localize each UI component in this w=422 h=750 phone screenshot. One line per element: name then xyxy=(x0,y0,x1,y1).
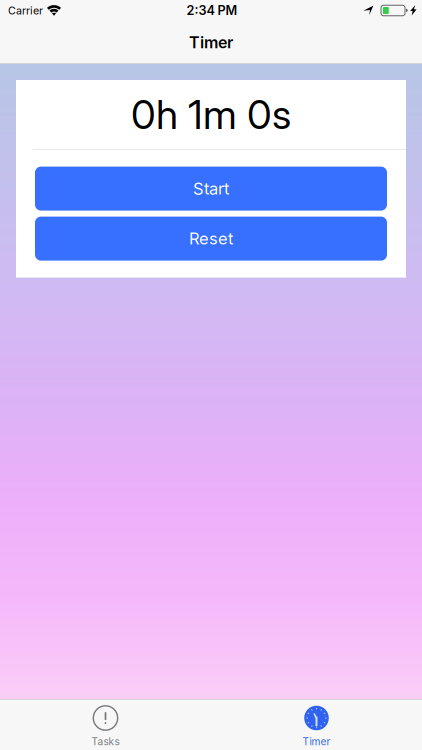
staticText: Start xyxy=(193,179,229,199)
button[interactable]: Start xyxy=(35,167,387,211)
button[interactable]: Reset xyxy=(35,217,387,261)
button[interactable]: Tasks xyxy=(0,699,211,749)
staticText: 0h 1m 0s xyxy=(131,90,291,139)
staticText: Timer xyxy=(189,33,233,52)
staticText: Reset xyxy=(189,229,233,249)
staticText: Carrier xyxy=(8,4,43,17)
staticText: Tasks xyxy=(91,735,119,748)
staticText: Timer xyxy=(302,735,330,748)
button[interactable]: Timer xyxy=(211,699,422,749)
staticText: 2:34 PM xyxy=(186,3,237,18)
